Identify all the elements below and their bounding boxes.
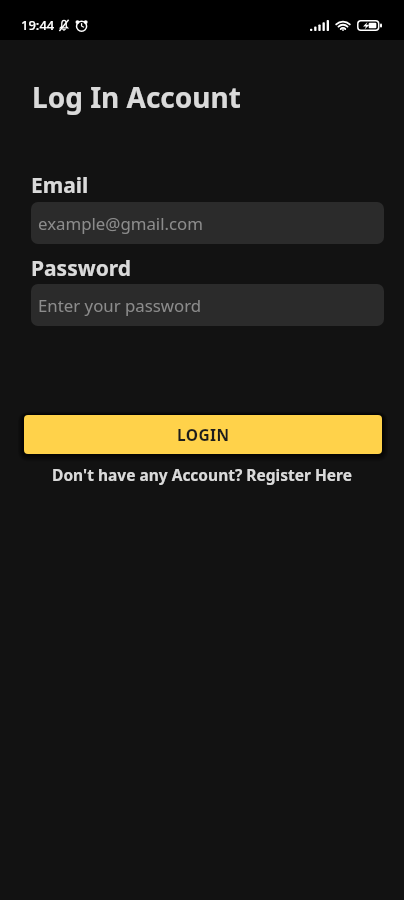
button[interactable]: LOGIN — [24, 415, 382, 454]
button[interactable]: Enter your password — [31, 284, 384, 326]
button[interactable]: Don't have any Account? Register Here — [0, 462, 404, 486]
other: Alarm set — [75, 18, 89, 33]
staticText: LOGIN — [177, 424, 230, 445]
staticText: Password — [31, 254, 132, 283]
staticText: Don't have any Account? Register Here — [52, 464, 352, 485]
staticText: example@gmail.com — [38, 212, 203, 235]
button[interactable]: example@gmail.com — [31, 202, 384, 244]
staticText: 19:44 — [21, 16, 55, 34]
other: Silent mode — [57, 18, 71, 33]
staticText: Email — [31, 171, 89, 200]
staticText: Enter your password — [38, 294, 202, 317]
staticText: Log In Account — [32, 78, 241, 116]
